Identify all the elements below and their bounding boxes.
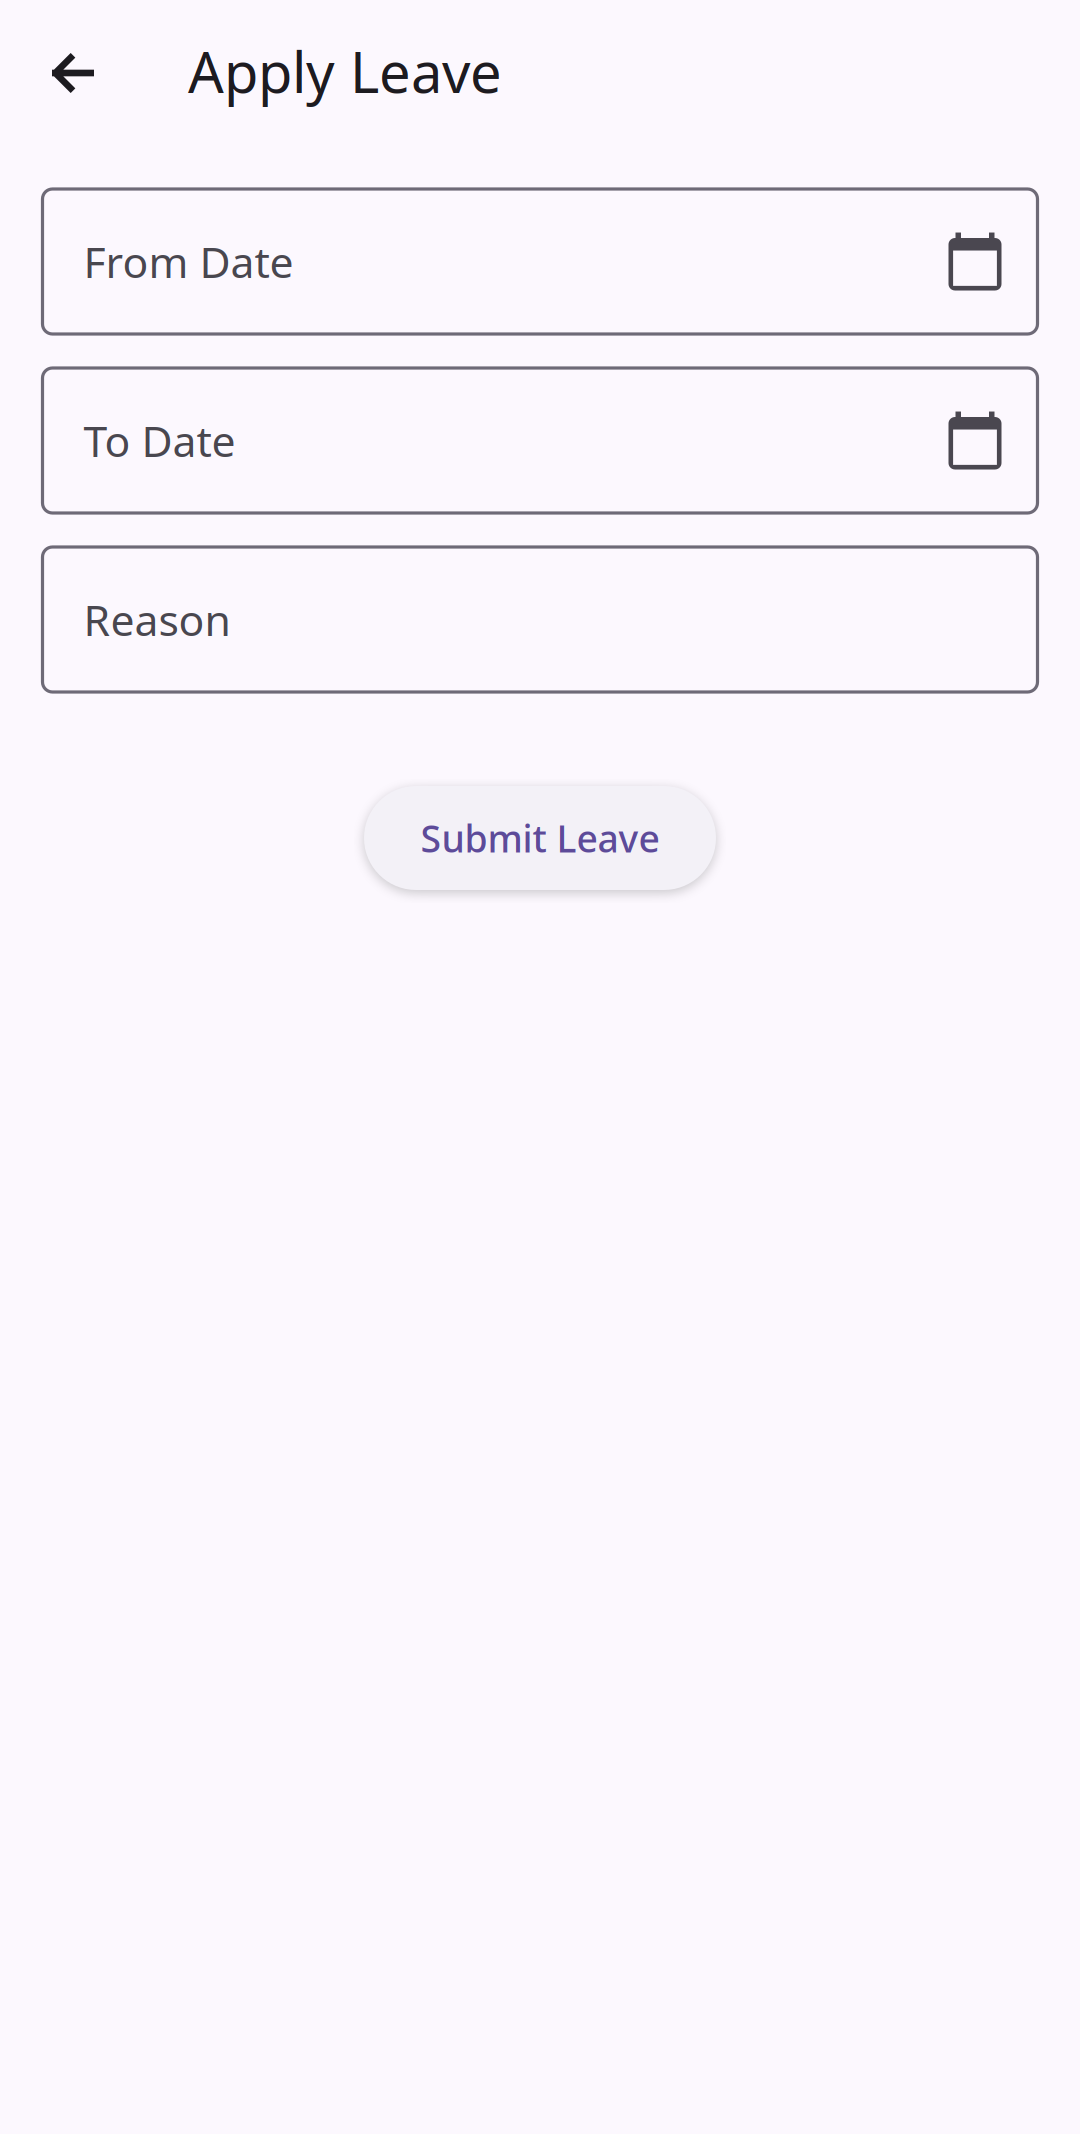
staticText: To Date <box>83 412 235 469</box>
staticText: Submit Leave <box>420 813 659 863</box>
button[interactable]: Back <box>0 0 94 94</box>
button[interactable]: To Date <box>42 368 1037 513</box>
button[interactable]: Reason <box>42 547 1037 692</box>
staticText: Apply Leave <box>188 34 502 108</box>
staticText: From Date <box>83 233 293 290</box>
button[interactable]: Submit Leave <box>364 786 716 890</box>
staticText: Reason <box>83 591 230 648</box>
button[interactable]: From Date <box>42 189 1037 334</box>
